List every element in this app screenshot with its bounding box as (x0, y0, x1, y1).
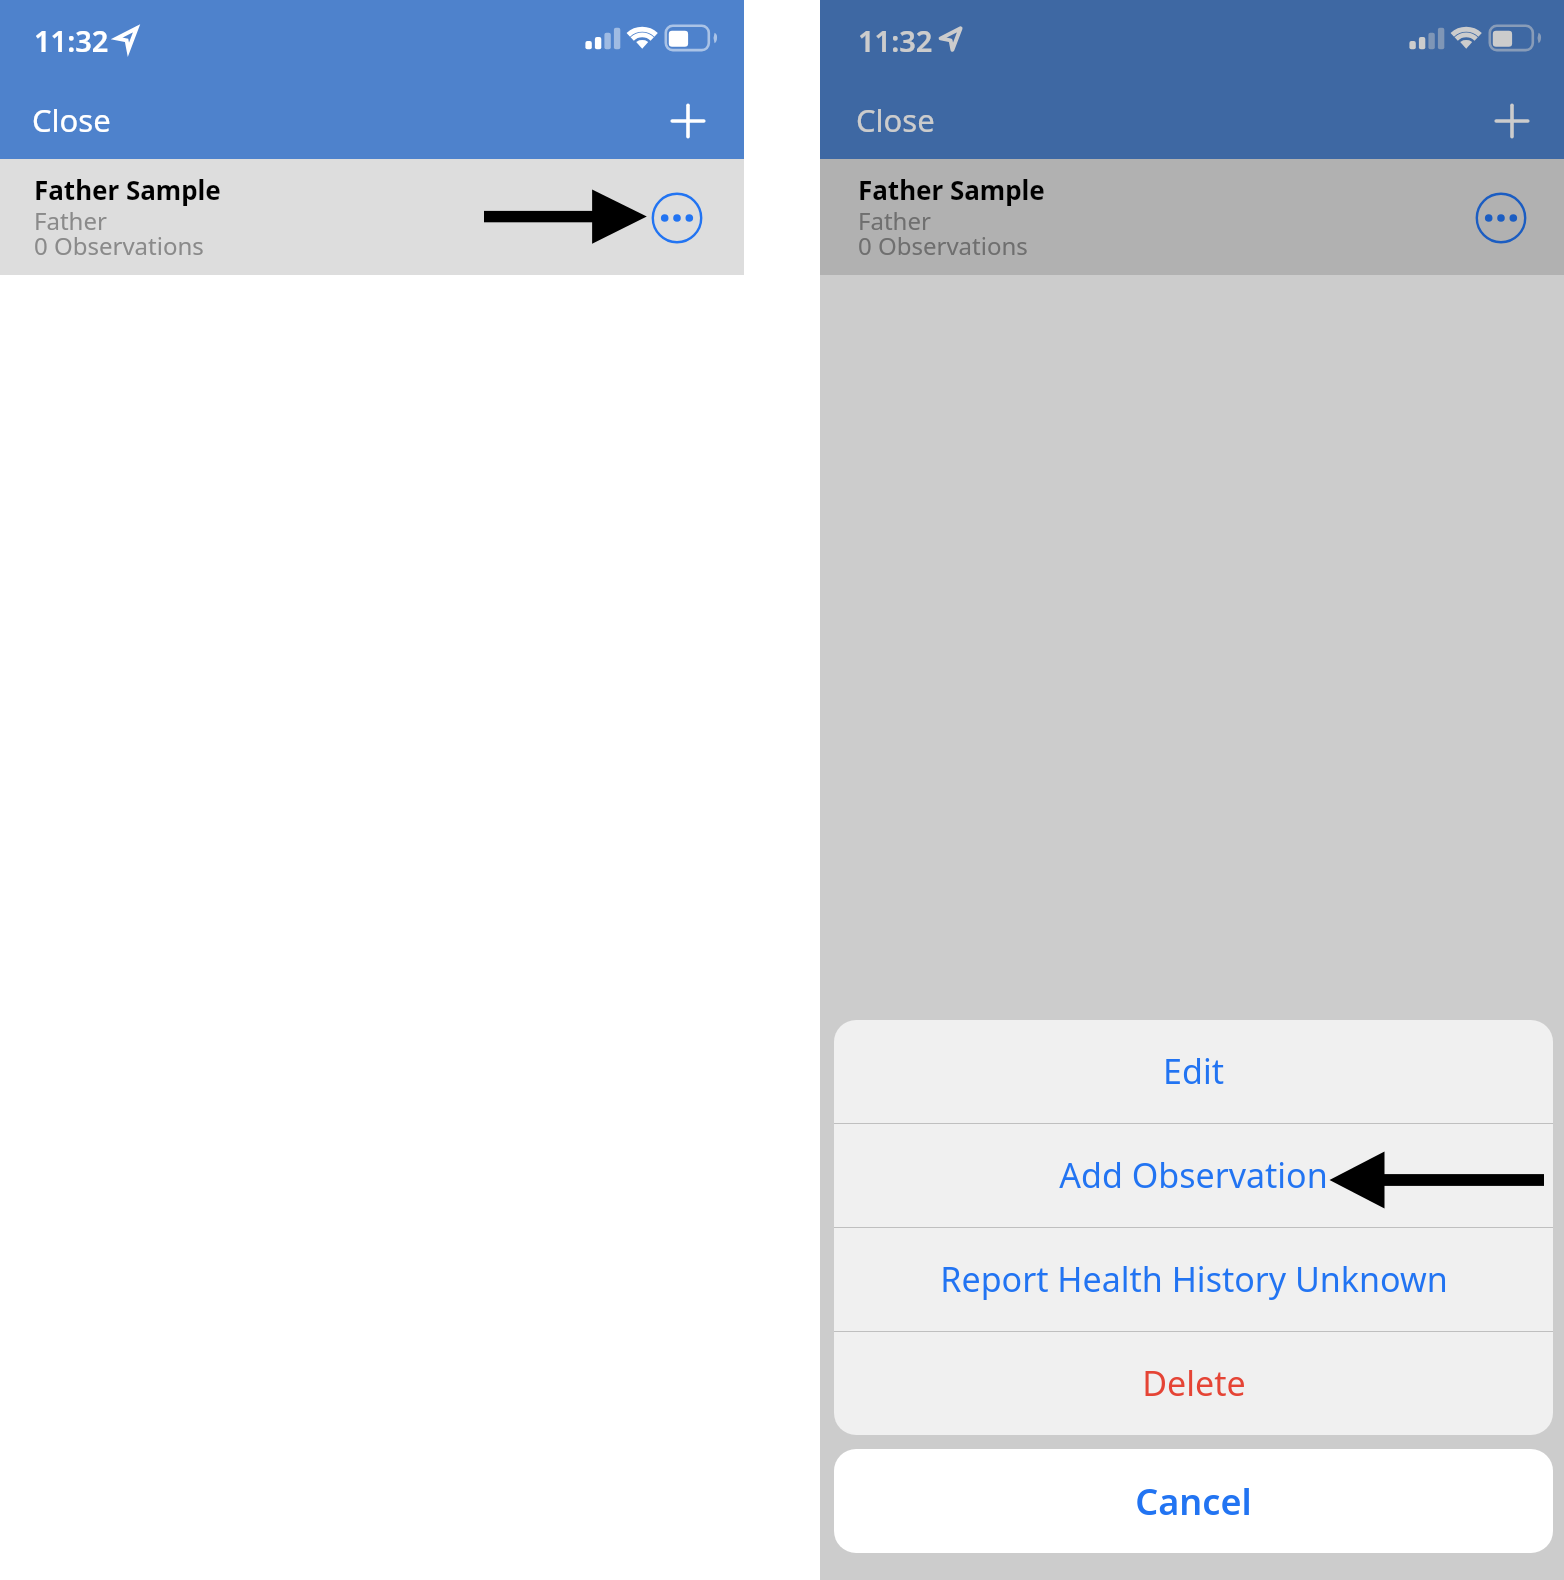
staticText: Close (32, 99, 111, 141)
staticText: Father Sample (858, 172, 1045, 207)
button[interactable]: Add Observation (834, 1124, 1553, 1227)
button[interactable]: Edit (834, 1020, 1553, 1123)
button[interactable]: Father Sample (0, 159, 744, 275)
staticText: Father (858, 204, 931, 237)
staticText: Close (856, 99, 935, 141)
button[interactable]: More options (648, 189, 706, 247)
staticText: Edit (1163, 1048, 1224, 1094)
button[interactable]: Delete (834, 1332, 1553, 1435)
staticText: 0 Observations (34, 229, 204, 262)
button[interactable]: More options (1472, 189, 1530, 247)
button[interactable]: Add (655, 88, 721, 154)
button[interactable]: Close (836, 91, 955, 149)
staticText: 0 Observations (858, 229, 1028, 262)
staticText: 11:32 (34, 21, 109, 60)
button[interactable]: Father Sample (820, 159, 1564, 275)
staticText: Cancel (1135, 1477, 1252, 1526)
staticText: Father (34, 204, 107, 237)
button[interactable]: Add (1479, 88, 1545, 154)
button[interactable]: Report Health History Unknown (834, 1228, 1553, 1331)
button[interactable]: Close (12, 91, 131, 149)
staticText: Add Observation (1059, 1152, 1328, 1198)
staticText: Father Sample (34, 172, 221, 207)
button[interactable]: Cancel (834, 1449, 1553, 1553)
staticText: Report Health History Unknown (940, 1256, 1448, 1302)
staticText: Delete (1142, 1360, 1246, 1406)
staticText: 11:32 (858, 21, 933, 60)
